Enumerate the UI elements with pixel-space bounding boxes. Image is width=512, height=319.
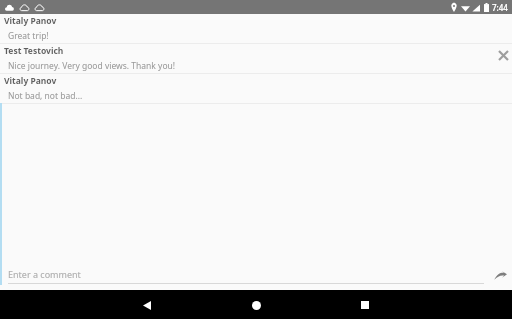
button[interactable]: Recent apps: [352, 292, 378, 318]
staticText: Not bad, not bad...: [8, 90, 83, 102]
button[interactable]: Enter a comment: [8, 268, 484, 284]
staticText: Test Testovich: [4, 45, 64, 57]
staticText: Great trip!: [8, 30, 49, 42]
button[interactable]: Vitaly Panov: [0, 74, 512, 103]
button[interactable]: Back: [134, 292, 160, 318]
button[interactable]: Delete comment: [494, 46, 512, 64]
button[interactable]: Test Testovich: [0, 44, 512, 73]
staticText: Vitaly Panov: [4, 15, 57, 27]
staticText: Nice journey. Very good views. Thank you…: [8, 60, 176, 72]
staticText: 7:44: [492, 2, 508, 13]
button[interactable]: Home: [243, 292, 269, 318]
button[interactable]: Vitaly Panov: [0, 14, 512, 43]
staticText: Vitaly Panov: [4, 75, 57, 87]
button[interactable]: Send: [488, 264, 512, 288]
staticText: Enter a comment: [8, 268, 81, 280]
